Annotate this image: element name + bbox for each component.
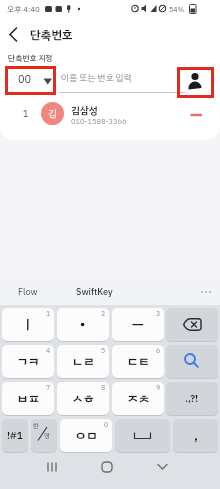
- button[interactable]: [177, 67, 214, 98]
- staticText: Flow: [18, 285, 38, 299]
- staticText: 단축번호 지정: [8, 52, 53, 64]
- button[interactable]: [146, 455, 178, 485]
- staticText: 단축번호: [30, 26, 73, 44]
- staticText: 김삼성: [71, 103, 98, 118]
- button[interactable]: ㅣ: [2, 308, 54, 341]
- staticText: ㄷㅌ: [127, 352, 150, 371]
- staticText: SwiftKey: [76, 285, 113, 299]
- button[interactable]: !#1: [2, 419, 28, 452]
- button[interactable]: [186, 103, 212, 129]
- staticText: ㅅㅎ: [72, 389, 95, 408]
- button[interactable]: ㅅㅎ: [57, 382, 109, 415]
- button[interactable]: 00: [5, 66, 56, 95]
- button[interactable]: ㄷㅌ: [112, 345, 164, 378]
- staticText: 2: [101, 308, 106, 319]
- staticText: ㅈㅊ: [127, 389, 150, 408]
- staticText: 3: [156, 308, 161, 319]
- staticText: 6: [156, 345, 161, 356]
- staticText: !#1: [7, 428, 23, 443]
- staticText: 8: [101, 382, 106, 393]
- staticText: 00: [18, 71, 32, 88]
- button[interactable]: ㅡ: [112, 308, 164, 341]
- button[interactable]: [36, 455, 68, 485]
- button[interactable]: [166, 345, 218, 378]
- button[interactable]: .,?!: [166, 382, 218, 415]
- button[interactable]: [91, 455, 123, 485]
- staticText: ㄴㄹ: [72, 352, 95, 371]
- staticText: 이름 또는 번호 입력: [61, 71, 132, 85]
- staticText: ㅡ: [132, 315, 144, 335]
- button[interactable]: [68, 280, 126, 305]
- staticText: 오후 4:40: [7, 3, 40, 15]
- staticText: ㅣ: [22, 315, 34, 335]
- button[interactable]: [194, 280, 218, 305]
- staticText: 0: [104, 419, 109, 430]
- button[interactable]: 김: [41, 102, 64, 125]
- staticText: 54%: [169, 4, 184, 15]
- staticText: 1: [46, 308, 51, 319]
- staticText: 김: [48, 107, 57, 121]
- button[interactable]: ,: [173, 419, 218, 452]
- button[interactable]: [5, 25, 27, 47]
- staticText: .,?!: [185, 391, 199, 406]
- staticText: 영: [44, 431, 50, 441]
- staticText: 1: [23, 107, 29, 121]
- button[interactable]: ㅂㅍ: [2, 382, 54, 415]
- staticText: ㅂㅍ: [17, 389, 40, 408]
- staticText: ㅇㅁ: [75, 426, 98, 445]
- staticText: ㄱㅋ: [17, 352, 40, 371]
- button[interactable]: ㅇㅁ: [60, 419, 112, 452]
- button[interactable]: ㄱㅋ: [2, 345, 54, 378]
- button[interactable]: [115, 419, 170, 452]
- button[interactable]: ㄴㄹ: [57, 345, 109, 378]
- staticText: 한: [33, 421, 39, 431]
- staticText: 4: [46, 345, 51, 356]
- button[interactable]: ㅈㅊ: [112, 382, 164, 415]
- staticText: 5: [101, 345, 106, 356]
- button[interactable]: 2: [57, 308, 109, 341]
- button[interactable]: [166, 308, 218, 341]
- staticText: 010-1588-3366: [71, 116, 127, 127]
- staticText: ,: [194, 426, 198, 446]
- button[interactable]: [31, 419, 57, 452]
- staticText: 9: [156, 382, 161, 393]
- button[interactable]: [0, 98, 185, 138]
- button[interactable]: [10, 280, 54, 305]
- staticText: 7: [46, 382, 51, 393]
